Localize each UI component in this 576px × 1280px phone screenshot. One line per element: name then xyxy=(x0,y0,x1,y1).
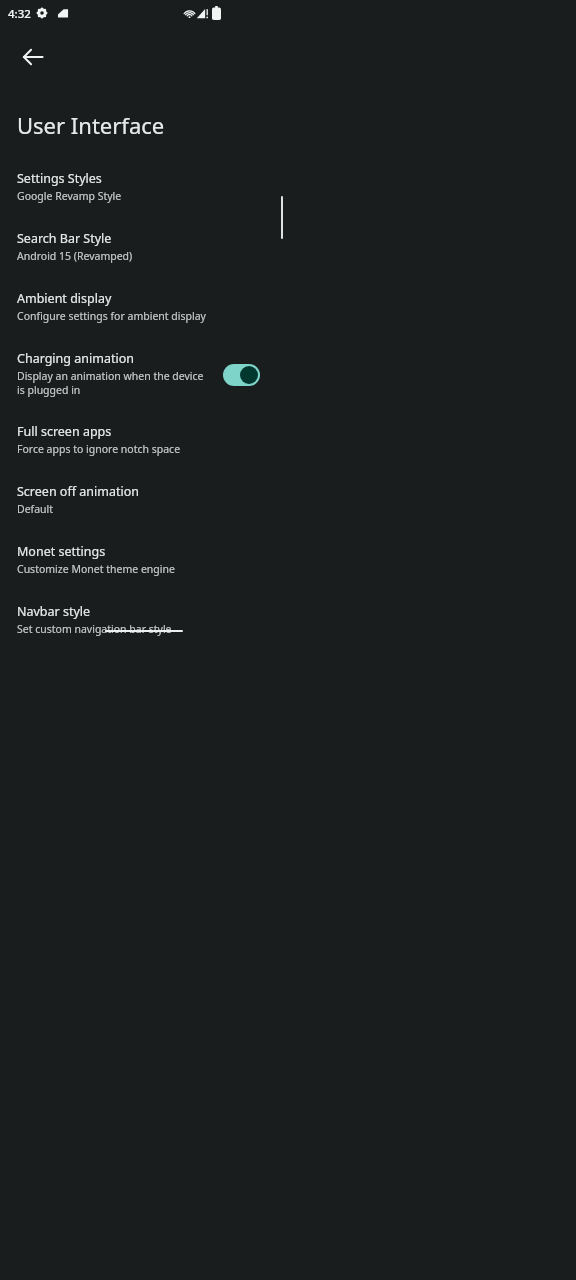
staticText: Customize Monet theme engine xyxy=(17,562,175,576)
staticText: Navbar style xyxy=(17,603,91,620)
staticText: Search Bar Style xyxy=(17,230,112,247)
staticText: Android 15 (Revamped) xyxy=(17,249,133,263)
staticText: Set custom navigation bar style xyxy=(17,622,172,636)
button[interactable]: Back xyxy=(9,33,57,81)
staticText: Screen off animation xyxy=(17,483,139,500)
staticText: Force apps to ignore notch space xyxy=(17,442,181,456)
staticText: Full screen apps xyxy=(17,423,112,440)
staticText: Ambient display xyxy=(17,290,112,307)
staticText: 4:32 xyxy=(8,6,31,22)
staticText: Monet settings xyxy=(17,543,106,560)
staticText: Configure settings for ambient display xyxy=(17,309,206,323)
staticText: Google Revamp Style xyxy=(17,189,122,203)
button[interactable]: Screen off animation xyxy=(0,483,576,516)
staticText: Display an animation when the device is … xyxy=(17,369,213,397)
staticText: User Interface xyxy=(17,110,165,140)
button[interactable]: Settings Styles xyxy=(0,170,576,203)
button[interactable]: Charging animation toggle xyxy=(223,364,260,386)
button[interactable]: Navbar style xyxy=(0,603,576,636)
button[interactable]: Ambient display xyxy=(0,290,576,323)
staticText: Default xyxy=(17,502,54,516)
button[interactable]: Monet settings xyxy=(0,543,576,576)
staticText: Charging animation xyxy=(17,350,134,367)
button[interactable]: Full screen apps xyxy=(0,423,576,456)
button[interactable]: Charging animation xyxy=(0,350,576,397)
button[interactable]: Search Bar Style xyxy=(0,230,576,263)
staticText: Settings Styles xyxy=(17,170,102,187)
